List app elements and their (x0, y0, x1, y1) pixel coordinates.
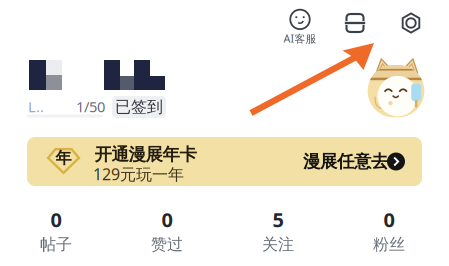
staticText: 赞过 (151, 235, 183, 254)
button[interactable]: 0 (111, 207, 222, 255)
button[interactable]: 年 (27, 137, 422, 186)
button[interactable]: 设置 (389, 1, 433, 45)
staticText: 粉丝 (373, 235, 405, 254)
button[interactable]: 头像 (365, 58, 427, 120)
staticText: 帖子 (40, 235, 72, 254)
staticText: 5 (272, 206, 283, 233)
staticText: 年 (55, 148, 71, 168)
staticText: 关注 (262, 235, 294, 254)
staticText: 1/50 (76, 97, 105, 116)
staticText: L.. (28, 97, 44, 116)
staticText: 漫展任意去 (303, 151, 388, 172)
staticText: 0 (161, 206, 172, 233)
staticText: 开通漫展年卡 (94, 144, 196, 165)
button[interactable]: 0 (333, 207, 444, 255)
staticText: 已签到 (115, 97, 163, 117)
button[interactable]: 5 (222, 207, 333, 255)
staticText: 0 (50, 206, 61, 233)
staticText: 0 (383, 206, 394, 233)
staticText: AI客服 (283, 31, 316, 46)
button[interactable]: 0 (0, 207, 111, 255)
staticText: 129元玩一年 (93, 163, 184, 185)
button[interactable]: AI客服 (274, 5, 326, 49)
button[interactable]: 已签到 (112, 96, 166, 118)
button[interactable]: 我的卡券 (333, 1, 377, 45)
